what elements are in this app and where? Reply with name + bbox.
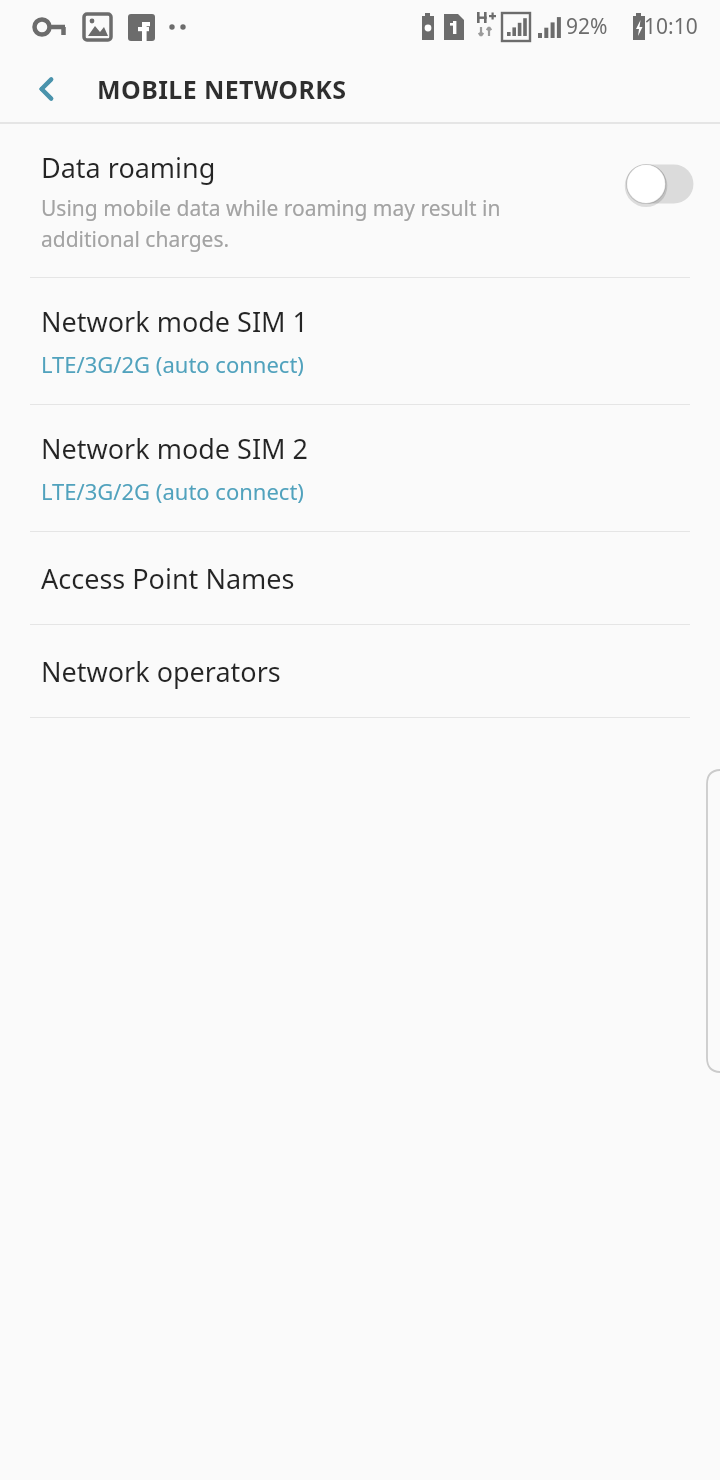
button[interactable]: Access Point Names — [0, 532, 720, 624]
staticText: Data roaming — [41, 149, 216, 186]
staticText: 10:10 — [644, 12, 698, 41]
staticText: MOBILE NETWORKS — [97, 72, 347, 106]
staticText: Access Point Names — [41, 560, 295, 597]
staticText: 92% — [566, 12, 608, 41]
button[interactable]: Network mode SIM 2 — [0, 405, 720, 531]
button[interactable]: Data roaming — [0, 124, 720, 277]
button[interactable]: Data roaming — [622, 159, 698, 209]
staticText: LTE/3G/2G (auto connect) — [41, 476, 304, 506]
staticText: Network operators — [41, 653, 281, 690]
staticText: Using mobile data while roaming may resu… — [41, 194, 501, 253]
staticText: LTE/3G/2G (auto connect) — [41, 349, 304, 379]
staticText: Network mode SIM 2 — [41, 430, 309, 467]
button[interactable]: Network operators — [0, 625, 720, 717]
staticText: Network mode SIM 1 — [41, 303, 309, 340]
button[interactable]: Network mode SIM 1 — [0, 278, 720, 404]
button[interactable]: Back — [18, 60, 76, 118]
